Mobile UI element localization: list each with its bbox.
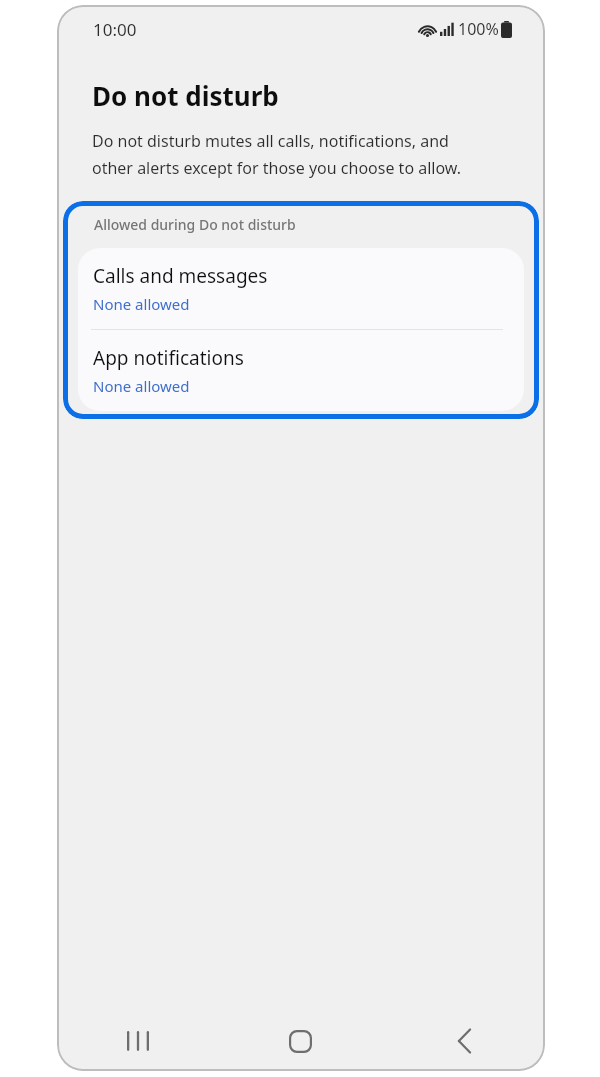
- button[interactable]: Recent apps: [57, 1011, 219, 1071]
- staticText: Allowed during Do not disturb: [94, 215, 296, 234]
- button[interactable]: App notifications: [78, 330, 524, 411]
- button[interactable]: Home: [219, 1011, 382, 1071]
- staticText: 100%: [458, 18, 499, 40]
- staticText: Calls and messages: [93, 263, 268, 289]
- staticText: Do not disturb: [92, 78, 279, 113]
- staticText: None allowed: [93, 294, 190, 314]
- staticText: App notifications: [93, 345, 244, 371]
- button[interactable]: Calls and messages: [78, 248, 524, 329]
- staticText: Do not disturb mutes all calls, notifica…: [92, 130, 462, 179]
- staticText: 10:00: [93, 18, 137, 41]
- staticText: None allowed: [93, 376, 190, 396]
- button[interactable]: Back: [382, 1011, 545, 1071]
